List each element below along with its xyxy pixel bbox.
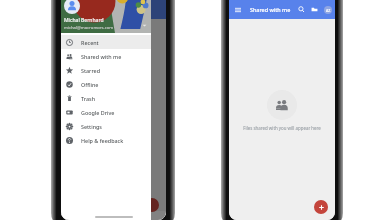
button[interactable]: Help & feedback: [61, 133, 151, 147]
staticText: Offline: [81, 81, 99, 88]
button[interactable]: Open navigation menu: [232, 4, 243, 15]
button[interactable]: Account: [322, 4, 333, 15]
staticText: Recent: [81, 39, 99, 46]
staticText: Shared with me: [81, 53, 122, 60]
button[interactable]: Google Drive: [61, 105, 151, 119]
staticText: AZ: [326, 8, 331, 13]
staticText: Files shared with you will appear here: [243, 125, 321, 131]
staticText: michal@macrumors.com: [64, 25, 114, 31]
button[interactable]: Create new: [314, 200, 328, 214]
button[interactable]: Starred: [61, 63, 151, 77]
button[interactable]: Trash: [61, 91, 151, 105]
staticText: Trash: [81, 95, 96, 102]
staticText: Starred: [81, 67, 101, 74]
staticText: Michal Bernhard: [64, 17, 104, 24]
staticText: Shared with me: [250, 6, 291, 13]
button[interactable]: Offline: [61, 77, 151, 91]
staticText: Help & feedback: [81, 137, 124, 144]
button[interactable]: Search: [296, 4, 307, 15]
button[interactable]: New folder: [309, 4, 320, 15]
button[interactable]: Recent: [61, 35, 151, 49]
button[interactable]: Shared with me: [61, 49, 151, 63]
staticText: Settings: [81, 123, 102, 130]
button[interactable]: Settings: [61, 119, 151, 133]
staticText: Google Drive: [81, 109, 115, 116]
